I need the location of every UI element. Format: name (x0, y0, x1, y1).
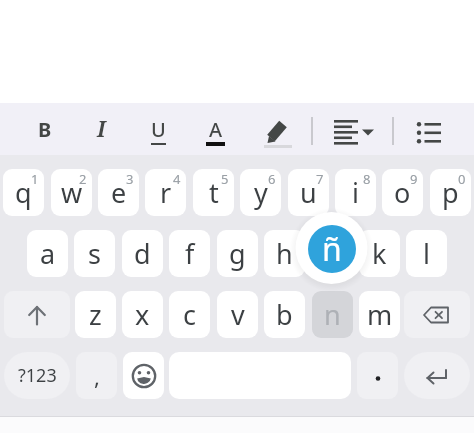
button[interactable]: o (382, 169, 423, 216)
button[interactable]: B (25, 103, 65, 155)
staticText: 5 (221, 170, 229, 188)
button[interactable]: e (98, 169, 139, 216)
button[interactable]: x (122, 291, 163, 338)
staticText: ?123 (18, 363, 57, 388)
staticText: w (61, 174, 83, 211)
staticText: 8 (363, 170, 371, 188)
button[interactable]: g (217, 230, 258, 277)
button[interactable] (408, 108, 452, 152)
button[interactable]: ?123 (4, 352, 70, 399)
button[interactable]: q (3, 169, 44, 216)
staticText: B (38, 116, 52, 143)
button[interactable]: ñ (308, 225, 356, 273)
button[interactable]: h (264, 230, 305, 277)
staticText: u (300, 174, 317, 211)
staticText: 2 (79, 170, 87, 188)
button[interactable]: U (138, 103, 178, 155)
staticText: ñ (322, 227, 342, 271)
staticText: 6 (268, 170, 276, 188)
staticText: k (372, 235, 387, 272)
staticText: A (209, 116, 223, 143)
button[interactable]: b (264, 291, 305, 338)
staticText: v (231, 296, 245, 333)
staticText: x (135, 296, 150, 333)
staticText: c (183, 296, 196, 333)
button[interactable]: t (193, 169, 234, 216)
staticText: , (94, 361, 100, 391)
staticText: 0 (458, 170, 466, 188)
button[interactable]: d (122, 230, 163, 277)
staticText: j (328, 235, 335, 272)
staticText: t (209, 174, 219, 211)
button[interactable]: k (359, 230, 400, 277)
staticText: p (442, 174, 459, 211)
button[interactable]: y (240, 169, 281, 216)
button[interactable]: l (406, 230, 447, 277)
button[interactable]: s (74, 230, 115, 277)
staticText: n (324, 296, 341, 333)
button[interactable]: w (51, 169, 92, 216)
button[interactable]: m (359, 291, 400, 338)
button[interactable] (404, 291, 470, 338)
button[interactable] (258, 108, 298, 152)
button[interactable]: u (288, 169, 329, 216)
staticText: 1 (31, 170, 39, 188)
button[interactable]: n (312, 291, 353, 338)
button[interactable]: f (169, 230, 210, 277)
staticText: f (185, 235, 195, 272)
button[interactable] (404, 352, 470, 399)
button[interactable]: p (430, 169, 471, 216)
staticText: 9 (410, 170, 418, 188)
button[interactable]: j (311, 230, 352, 277)
staticText: U (151, 116, 166, 143)
staticText: b (276, 296, 293, 333)
staticText: 7 (316, 170, 324, 188)
staticText: s (88, 235, 101, 272)
staticText: a (40, 235, 56, 272)
staticText: i (352, 174, 359, 211)
button[interactable]: I (81, 103, 121, 155)
button[interactable]: c (169, 291, 210, 338)
staticText: g (229, 235, 246, 272)
staticText: h (276, 235, 293, 272)
staticText: d (134, 235, 151, 272)
button[interactable]: z (75, 291, 116, 338)
button[interactable]: r (145, 169, 186, 216)
button[interactable] (357, 352, 398, 399)
staticText: z (89, 296, 102, 333)
staticText: l (423, 235, 430, 272)
button[interactable]: i (335, 169, 376, 216)
button[interactable]: a (27, 230, 68, 277)
staticText: y (254, 174, 268, 211)
button[interactable] (328, 108, 386, 152)
staticText: o (394, 174, 411, 211)
staticText: 4 (173, 170, 181, 188)
button[interactable]: , (76, 352, 117, 399)
button[interactable]: v (217, 291, 258, 338)
staticText: m (367, 296, 393, 333)
staticText: q (15, 174, 32, 211)
staticText: I (97, 115, 106, 144)
button[interactable] (123, 352, 164, 399)
staticText: r (160, 174, 172, 211)
button[interactable] (4, 291, 70, 338)
button[interactable]: A (196, 103, 236, 155)
staticText: 3 (126, 170, 134, 188)
staticText: e (111, 174, 127, 211)
